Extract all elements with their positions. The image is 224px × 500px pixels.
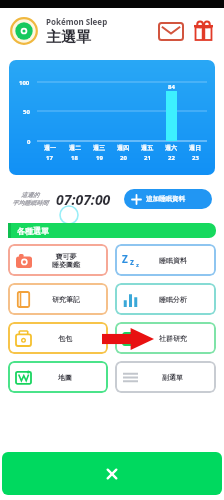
- staticText: 追加睡眠資料: [146, 195, 185, 203]
- staticText: 週三: [93, 144, 105, 152]
- staticText: 睡眠分析: [159, 295, 187, 304]
- staticText: 19: [96, 154, 103, 162]
- staticText: 主選單: [46, 28, 91, 47]
- button[interactable]: 寶可夢 睡姿圖鑑: [8, 244, 108, 276]
- staticText: 週日: [189, 144, 201, 152]
- staticText: 研究筆記: [52, 295, 80, 304]
- button[interactable]: 研究筆記: [8, 283, 108, 315]
- staticText: z: [130, 256, 134, 267]
- staticText: 07:07:00: [56, 190, 111, 209]
- button[interactable]: 包包: [8, 322, 108, 354]
- button[interactable]: Z: [115, 244, 216, 276]
- staticText: 23: [192, 154, 199, 162]
- staticText: 22: [168, 154, 175, 162]
- staticText: 平均睡眠時間: [12, 199, 48, 207]
- staticText: 睡眠資料: [159, 256, 187, 265]
- button[interactable]: Mail: [158, 21, 184, 41]
- button[interactable]: Gifts: [192, 20, 214, 42]
- staticText: Pokémon Sleep: [46, 16, 108, 27]
- staticText: 50: [23, 108, 30, 116]
- button[interactable]: 睡眠分析: [115, 283, 216, 315]
- button[interactable]: 社群研究: [115, 322, 216, 354]
- staticText: 週四: [117, 144, 129, 152]
- staticText: 包包: [58, 334, 72, 343]
- staticText: 寶可夢 睡姿圖鑑: [52, 252, 80, 269]
- staticText: 副選單: [162, 373, 183, 382]
- staticText: 21: [144, 154, 151, 162]
- staticText: 84: [168, 83, 175, 91]
- staticText: 這週的: [21, 191, 39, 199]
- staticText: 100: [19, 79, 30, 87]
- staticText: 20: [120, 154, 127, 162]
- staticText: 0: [27, 138, 31, 146]
- staticText: 地圖: [58, 373, 72, 382]
- staticText: 週二: [69, 144, 81, 152]
- staticText: 18: [71, 154, 78, 162]
- staticText: 週五: [141, 144, 153, 152]
- button[interactable]: 副選單: [115, 361, 216, 393]
- button[interactable]: 地圖: [8, 361, 108, 393]
- staticText: Z: [122, 252, 128, 266]
- button[interactable]: Close: [2, 452, 222, 495]
- staticText: 週一: [44, 144, 56, 152]
- staticText: 17: [46, 154, 53, 162]
- staticText: z: [136, 261, 139, 269]
- staticText: 週六: [165, 144, 177, 152]
- button[interactable]: 追加睡眠資料: [124, 189, 212, 209]
- staticText: 各種選單: [17, 226, 49, 236]
- staticText: 社群研究: [159, 334, 187, 343]
